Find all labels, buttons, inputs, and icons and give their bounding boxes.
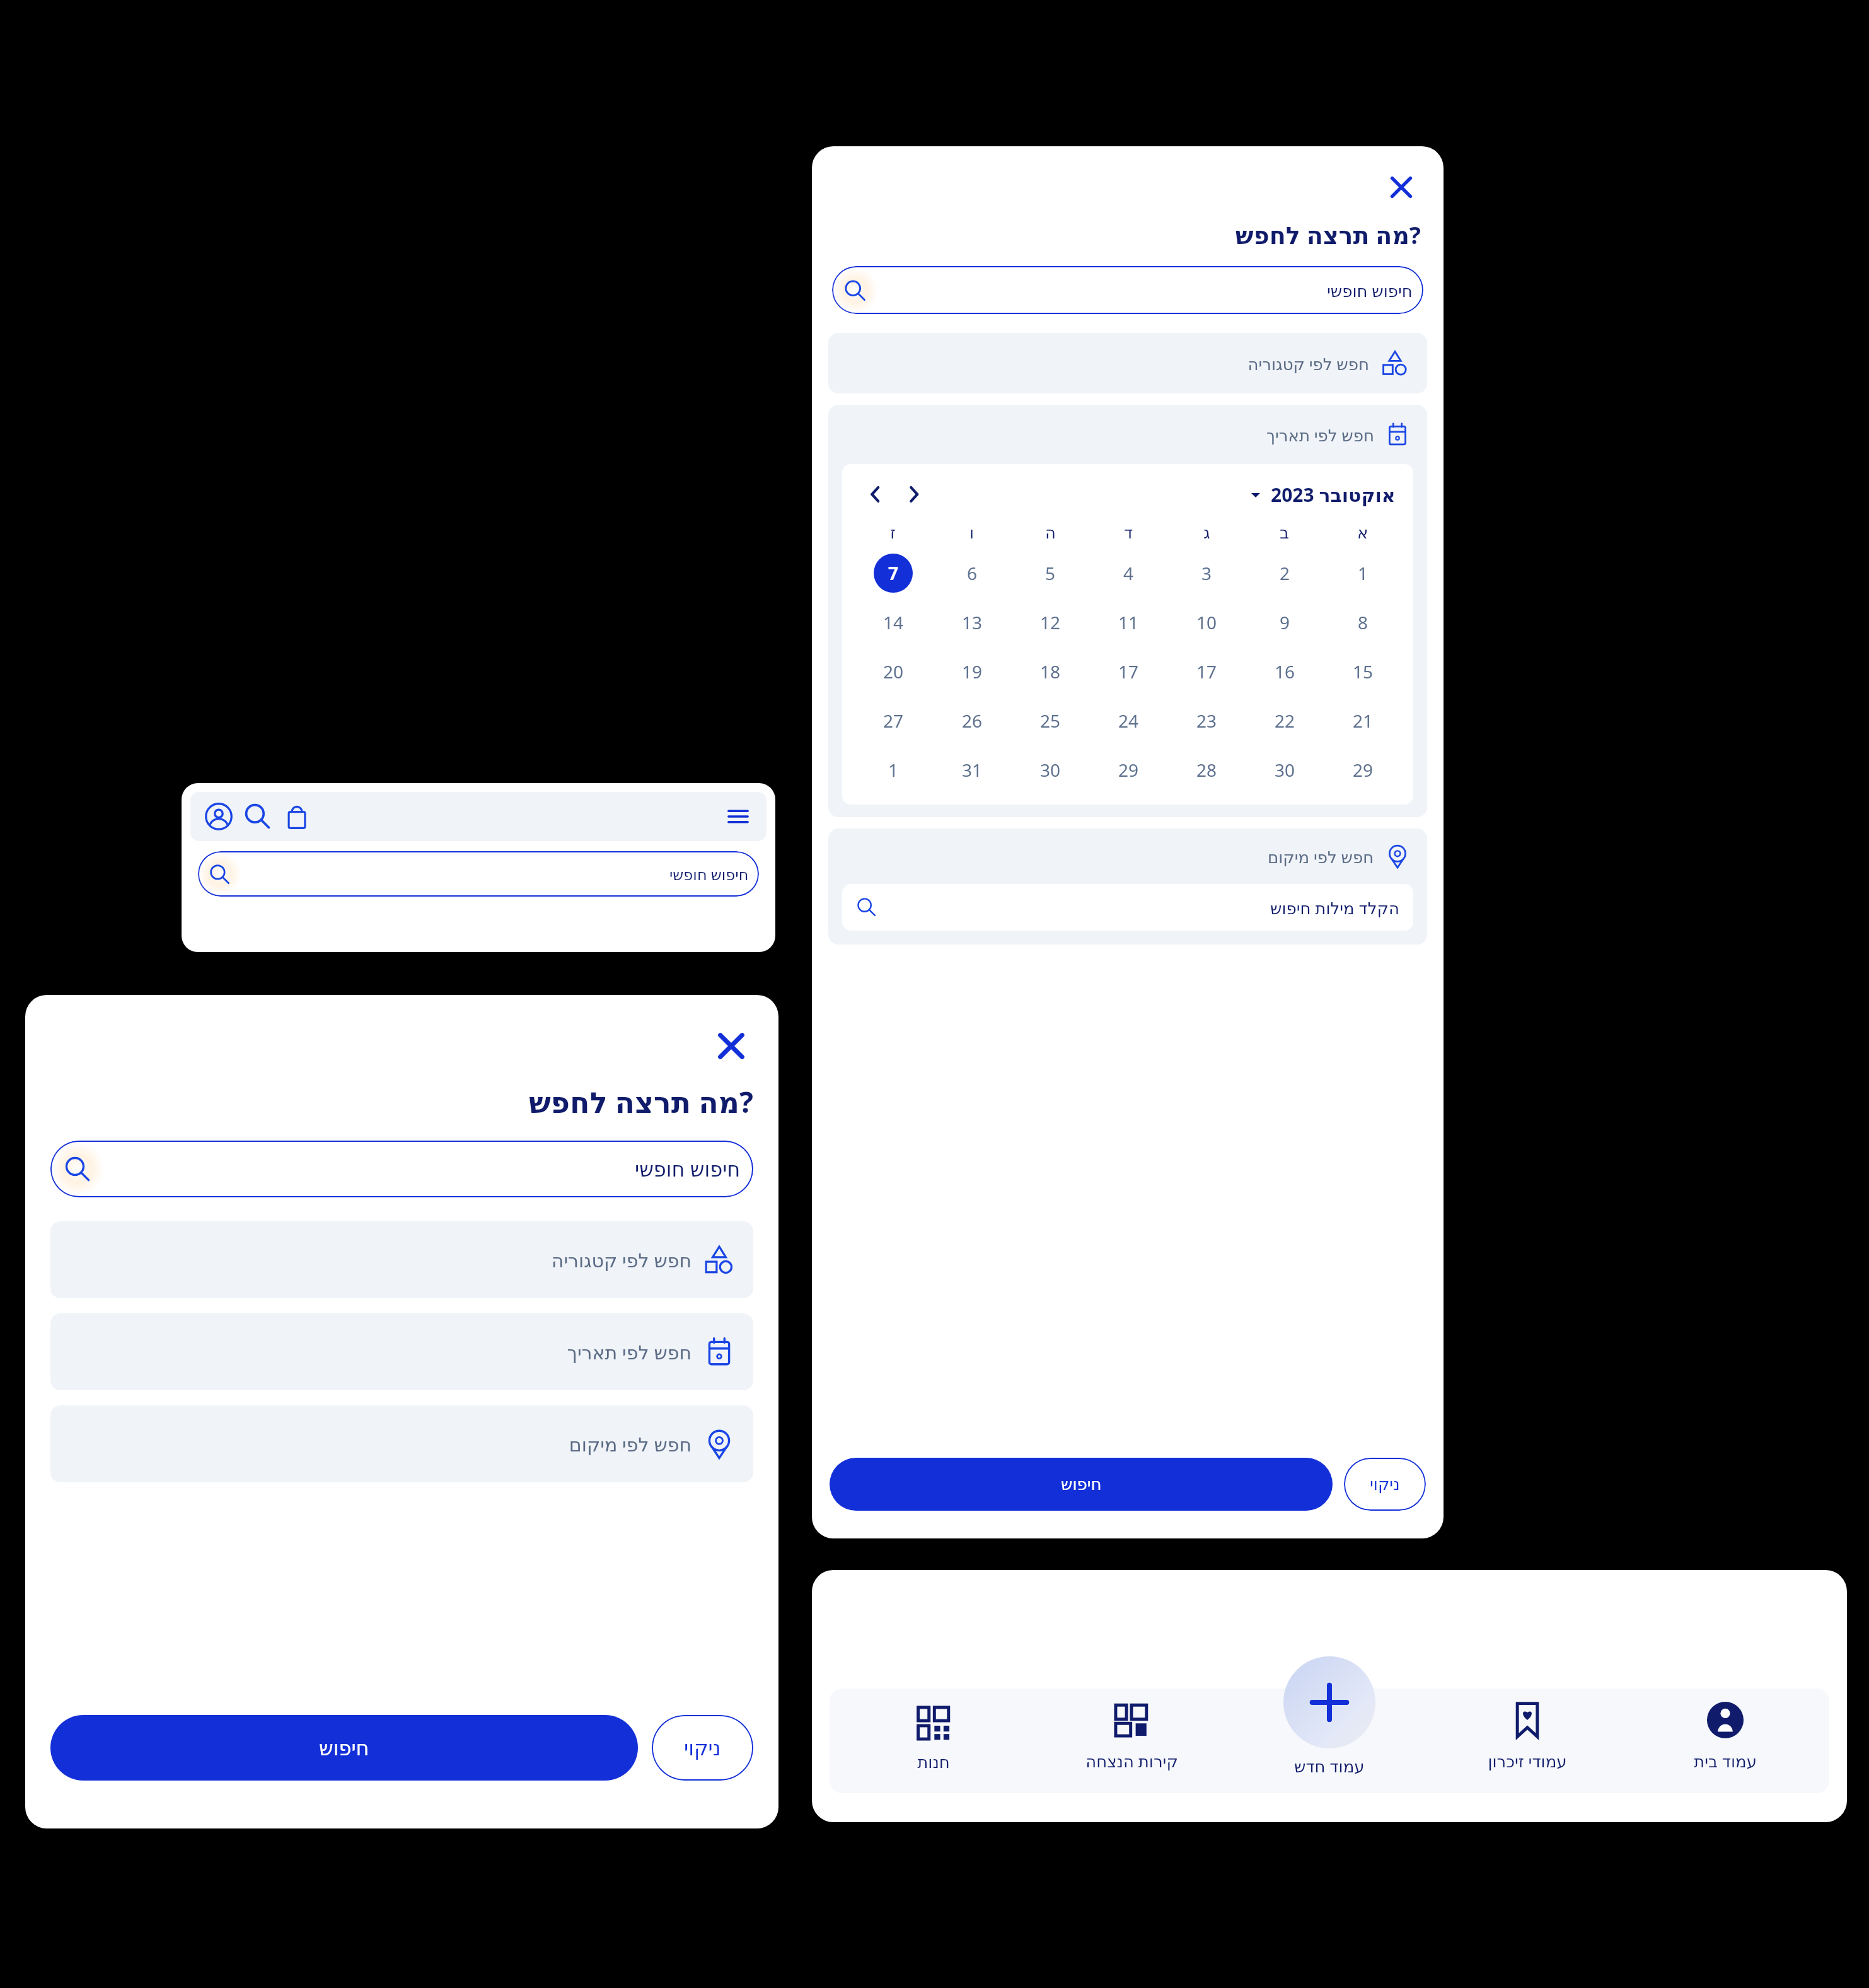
button[interactable]: חפש לפי מיקום	[50, 1405, 753, 1482]
staticText: 27	[883, 709, 904, 733]
button[interactable]: 30	[1031, 750, 1070, 789]
button[interactable]: חיפוש	[50, 1715, 638, 1781]
staticText: ד	[1124, 523, 1133, 542]
button[interactable]: עמודי זיכרון	[1428, 1694, 1626, 1793]
staticText: 2	[1280, 561, 1290, 585]
button[interactable]: 17	[1109, 652, 1148, 691]
button[interactable]: Previous month	[860, 479, 890, 509]
button[interactable]: Menu	[724, 802, 753, 831]
staticText: חנות	[917, 1753, 950, 1772]
button[interactable]: 2	[1265, 554, 1304, 593]
button[interactable]: 24	[1109, 701, 1148, 740]
button[interactable]: ניקוי	[652, 1715, 753, 1781]
button[interactable]: 10	[1187, 603, 1226, 642]
button[interactable]: חפש לפי מיקום	[828, 828, 1427, 884]
button[interactable]: 8	[1343, 603, 1382, 642]
staticText: חפש לפי קטגוריה	[551, 1247, 691, 1273]
button[interactable]: חנות	[835, 1697, 1033, 1793]
button[interactable]: 6	[952, 554, 992, 593]
button[interactable]: 30	[1265, 750, 1304, 789]
button[interactable]: 28	[1187, 750, 1226, 789]
staticText: 16	[1275, 660, 1295, 683]
button[interactable]: 1	[1343, 554, 1382, 593]
staticText: חפש לפי מיקום	[569, 1431, 691, 1457]
button[interactable]: 29	[1109, 750, 1148, 789]
button[interactable]: 5	[1031, 554, 1070, 593]
button[interactable]: 16	[1265, 652, 1304, 691]
button[interactable]: 14	[874, 603, 913, 642]
button[interactable]: 12	[1031, 603, 1070, 642]
button[interactable]: Next month	[899, 479, 929, 509]
staticText: 12	[1040, 610, 1061, 634]
staticText: 29	[1353, 758, 1374, 782]
staticText: חיפוש	[1061, 1475, 1102, 1494]
button[interactable]: Close	[1382, 168, 1421, 207]
button[interactable]: 19	[952, 652, 992, 691]
button[interactable]: 18	[1031, 652, 1070, 691]
button[interactable]: 31	[952, 750, 992, 789]
button[interactable]: 26	[952, 701, 992, 740]
staticText: 7	[888, 561, 899, 585]
staticText: 11	[1118, 610, 1139, 634]
staticText: 6	[967, 561, 978, 585]
button[interactable]: 29	[1343, 750, 1382, 789]
staticText: 1	[1358, 561, 1368, 585]
button[interactable]: קירות הנצחה	[1033, 1694, 1230, 1793]
button[interactable]: עמוד בית	[1626, 1694, 1824, 1793]
staticText: 23	[1196, 709, 1217, 733]
staticText: חפש לפי מיקום	[1268, 846, 1374, 868]
staticText: חפש לפי תאריך	[1266, 424, 1374, 446]
staticText: ג	[1203, 523, 1210, 542]
button[interactable]: חפש לפי קטגוריה	[828, 333, 1427, 393]
button[interactable]: 23	[1187, 701, 1226, 740]
staticText: 18	[1040, 660, 1061, 683]
staticText: 10	[1196, 610, 1217, 634]
button[interactable]: 15	[1343, 652, 1382, 691]
staticText: 19	[962, 660, 983, 683]
button[interactable]: 20	[874, 652, 913, 691]
button[interactable]: 4	[1109, 554, 1148, 593]
button[interactable]: Search	[243, 802, 272, 831]
button[interactable]: 11	[1109, 603, 1148, 642]
button[interactable]: חפש לפי קטגוריה	[50, 1221, 753, 1298]
staticText: 9	[1280, 610, 1290, 634]
button[interactable]: 21	[1343, 701, 1382, 740]
button[interactable]: חפש לפי תאריך	[50, 1313, 753, 1390]
staticText: חיפוש חופשי	[1327, 279, 1413, 301]
button[interactable]: חיפוש חופשי	[198, 851, 759, 897]
button[interactable]: חיפוש חופשי	[50, 1141, 753, 1197]
staticText: עמודי זיכרון	[1488, 1750, 1567, 1772]
button[interactable]: Cart	[282, 802, 311, 831]
button[interactable]: 1	[874, 750, 913, 789]
button[interactable]: Add new page	[1283, 1656, 1375, 1748]
button[interactable]: ניקוי	[1344, 1458, 1426, 1511]
button[interactable]: חפש לפי תאריך	[828, 405, 1427, 464]
staticText: מה תרצה לחפש?	[50, 1082, 753, 1122]
button[interactable]: 7	[874, 554, 913, 593]
button[interactable]: Close	[709, 1024, 753, 1068]
staticText: ה	[1045, 523, 1056, 542]
staticText: 22	[1275, 709, 1295, 733]
button[interactable]: 13	[952, 603, 992, 642]
button[interactable]: חיפוש	[830, 1458, 1333, 1511]
button[interactable]: Profile	[204, 802, 233, 831]
button[interactable]: 27	[874, 701, 913, 740]
button[interactable]: אוקטובר 2023	[1249, 482, 1396, 508]
button[interactable]: חיפוש חופשי	[832, 266, 1423, 314]
button[interactable]: 25	[1031, 701, 1070, 740]
staticText: חפש לפי תאריך	[567, 1339, 691, 1365]
staticText: 29	[1118, 758, 1139, 782]
staticText: אוקטובר 2023	[1271, 482, 1396, 508]
staticText: 25	[1040, 709, 1061, 733]
staticText: חפש לפי קטגוריה	[1247, 352, 1369, 375]
staticText: ו	[969, 523, 975, 542]
staticText: חיפוש	[319, 1736, 369, 1760]
button[interactable]: 17	[1187, 652, 1226, 691]
button[interactable]: 22	[1265, 701, 1304, 740]
staticText: 26	[962, 709, 983, 733]
staticText: עמוד בית	[1694, 1750, 1757, 1772]
button[interactable]: 3	[1187, 554, 1226, 593]
button[interactable]: הקלד מילות חיפוש	[842, 884, 1413, 931]
button[interactable]: 9	[1265, 603, 1304, 642]
staticText: חיפוש חופשי	[669, 864, 749, 885]
